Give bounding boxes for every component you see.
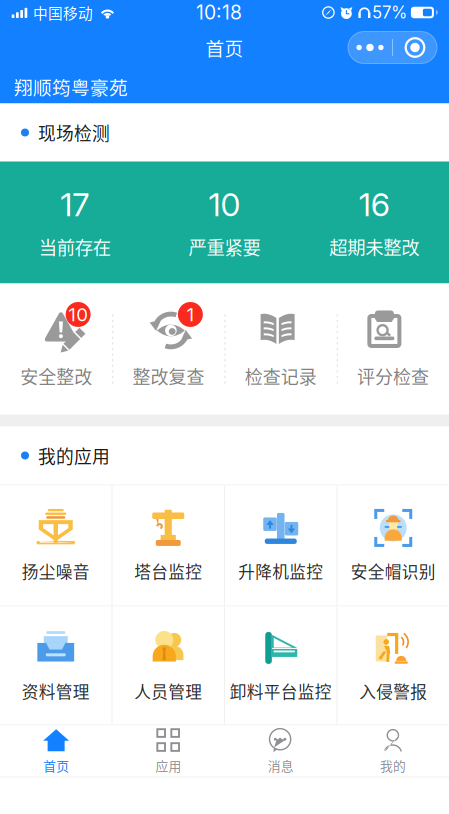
staticText: 1 — [186, 303, 194, 326]
button[interactable]: 消息 — [224, 725, 337, 777]
button[interactable]: 首页 — [0, 725, 112, 777]
staticText: 中国移动 — [33, 2, 93, 23]
button[interactable]: 扬尘噪音 — [0, 485, 111, 605]
button[interactable]: More — [348, 32, 392, 63]
staticText: 翔顺筠粤豪苑 — [14, 73, 128, 100]
staticText: 应用 — [155, 756, 181, 775]
button[interactable]: 检查记录 — [224, 283, 337, 414]
staticText: 安全整改 — [20, 363, 92, 389]
button[interactable]: 应用 — [112, 725, 224, 777]
staticText: 入侵警报 — [359, 679, 427, 703]
staticText: 首页 — [43, 756, 69, 775]
button[interactable]: 我的 — [337, 725, 449, 777]
staticText: 10:18 — [196, 1, 242, 24]
button[interactable]: 资料管理 — [0, 605, 111, 725]
staticText: 资料管理 — [22, 679, 90, 703]
staticText: 塔台监控 — [134, 559, 202, 583]
button[interactable]: 评分检查 — [337, 283, 449, 414]
button[interactable]: 安全帽识别 — [337, 485, 449, 605]
staticText: 检查记录 — [245, 363, 317, 389]
staticText: 扬尘噪音 — [22, 559, 90, 583]
staticText: 首页 — [205, 34, 243, 61]
staticText: 我的应用 — [38, 443, 110, 468]
staticText: 安全帽识别 — [351, 559, 436, 583]
staticText: 57% — [372, 2, 407, 23]
staticText: 卸料平台监控 — [230, 679, 332, 703]
button[interactable]: 人员管理 — [112, 605, 224, 725]
staticText: 10 — [68, 303, 88, 326]
staticText: 消息 — [268, 756, 294, 775]
staticText: 超期未整改 — [329, 233, 419, 260]
staticText: 我的 — [380, 756, 406, 775]
staticText: 评分检查 — [357, 363, 429, 389]
button[interactable]: Close — [393, 32, 437, 63]
button[interactable]: 升降机监控 — [225, 485, 336, 605]
staticText: 16 — [359, 185, 390, 224]
staticText: 当前存在 — [39, 233, 111, 260]
button[interactable]: 17 — [0, 161, 150, 283]
staticText: 现场检测 — [38, 120, 110, 145]
staticText: 17 — [60, 185, 89, 224]
button[interactable]: 10 — [0, 283, 112, 414]
staticText: 人员管理 — [134, 679, 202, 703]
staticText: 整改复查 — [132, 363, 204, 389]
button[interactable]: 16 — [299, 161, 449, 283]
staticText: 10 — [208, 185, 240, 224]
button[interactable]: 10 — [150, 161, 299, 283]
button[interactable]: 卸料平台监控 — [225, 605, 336, 725]
button[interactable]: 入侵警报 — [337, 605, 449, 725]
staticText: 严重紧要 — [188, 233, 260, 260]
button[interactable]: 塔台监控 — [112, 485, 224, 605]
staticText: 升降机监控 — [238, 559, 323, 583]
button[interactable]: 1 — [112, 283, 224, 414]
